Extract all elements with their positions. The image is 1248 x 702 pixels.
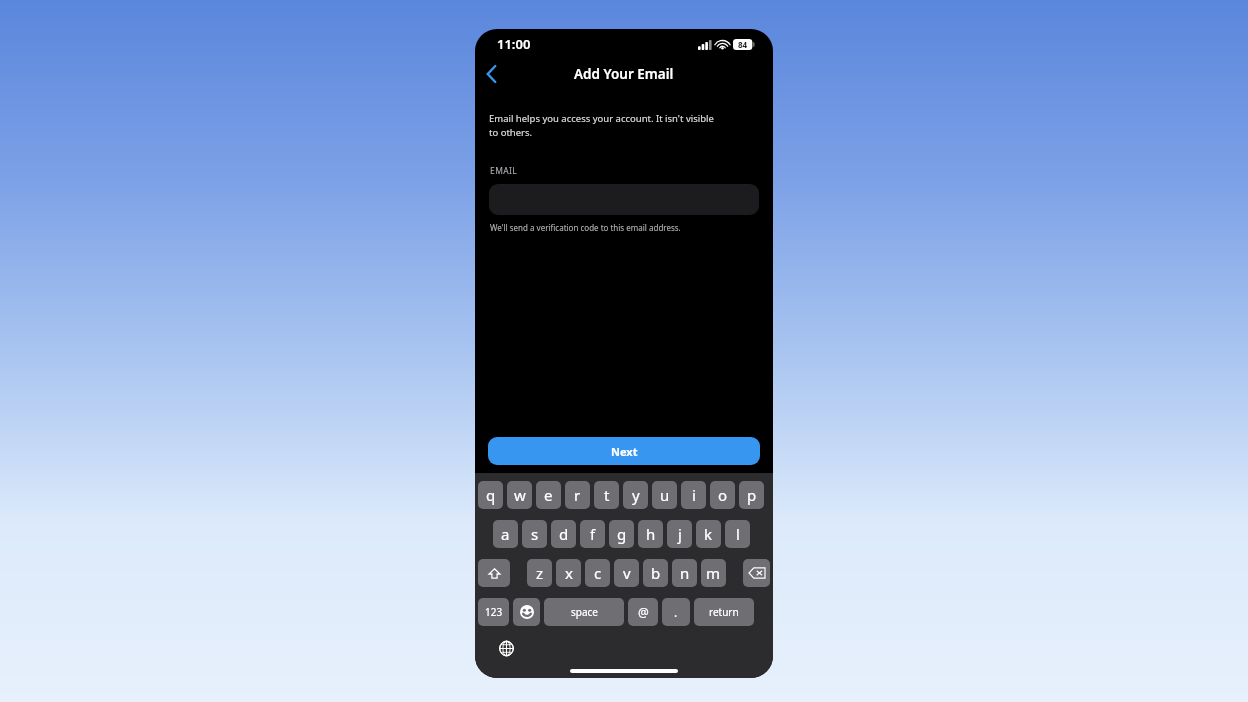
staticText: t: [604, 485, 610, 505]
staticText: i: [692, 485, 696, 505]
button[interactable]: m: [701, 559, 726, 587]
button[interactable]: return: [694, 598, 754, 626]
staticText: y: [632, 485, 640, 505]
staticText: d: [559, 524, 569, 544]
staticText: h: [646, 524, 656, 544]
button[interactable]: s: [522, 520, 547, 548]
button[interactable]: x: [556, 559, 581, 587]
staticText: @: [638, 604, 649, 620]
staticText: EMAIL: [490, 165, 518, 177]
button[interactable]: a: [493, 520, 518, 548]
button[interactable]: b: [643, 559, 668, 587]
staticText: z: [536, 563, 544, 583]
staticText: q: [486, 485, 496, 505]
staticText: a: [501, 524, 510, 544]
button[interactable]: f: [580, 520, 605, 548]
button[interactable]: Change keyboard language: [495, 637, 517, 659]
button[interactable]: Emoji: [513, 598, 540, 626]
button[interactable]: c: [585, 559, 610, 587]
staticText: u: [660, 485, 670, 505]
button[interactable]: e: [536, 481, 561, 509]
button[interactable]: w: [507, 481, 532, 509]
button[interactable]: g: [609, 520, 634, 548]
staticText: Add Your Email: [574, 65, 674, 83]
staticText: Next: [611, 444, 638, 459]
button[interactable]: d: [551, 520, 576, 548]
staticText: j: [678, 524, 682, 544]
button[interactable]: o: [710, 481, 735, 509]
button[interactable]: h: [638, 520, 663, 548]
button[interactable]: space: [544, 598, 624, 626]
staticText: f: [590, 524, 596, 544]
staticText: 84: [738, 39, 748, 50]
button[interactable]: @: [628, 598, 658, 626]
staticText: v: [623, 563, 631, 583]
button[interactable]: 123: [478, 598, 509, 626]
button[interactable]: .: [662, 598, 690, 626]
button[interactable]: l: [725, 520, 750, 548]
staticText: x: [565, 563, 573, 583]
button[interactable]: Next: [488, 437, 760, 465]
button[interactable]: j: [667, 520, 692, 548]
staticText: .: [674, 604, 678, 620]
button[interactable]: k: [696, 520, 721, 548]
button[interactable]: p: [739, 481, 764, 509]
button[interactable]: q: [478, 481, 503, 509]
staticText: s: [531, 524, 539, 544]
staticText: g: [617, 524, 627, 544]
staticText: o: [718, 485, 728, 505]
button[interactable]: u: [652, 481, 677, 509]
staticText: m: [706, 563, 721, 583]
staticText: return: [709, 605, 739, 619]
staticText: l: [736, 524, 740, 544]
staticText: r: [574, 485, 581, 505]
staticText: c: [594, 563, 602, 583]
staticText: k: [704, 524, 713, 544]
staticText: Email helps you access your account. It …: [489, 112, 714, 139]
button[interactable]: r: [565, 481, 590, 509]
staticText: n: [680, 563, 690, 583]
staticText: 123: [485, 605, 503, 619]
staticText: e: [544, 485, 553, 505]
button[interactable]: z: [527, 559, 552, 587]
button[interactable]: v: [614, 559, 639, 587]
button[interactable]: t: [594, 481, 619, 509]
staticText: 11:00: [497, 35, 531, 53]
staticText: We'll send a verification code to this e…: [490, 222, 681, 233]
staticText: w: [514, 485, 526, 505]
button[interactable]: Backspace: [743, 559, 770, 587]
button[interactable]: n: [672, 559, 697, 587]
button[interactable]: Shift: [478, 559, 510, 587]
staticText: b: [651, 563, 661, 583]
button[interactable]: i: [681, 481, 706, 509]
staticText: space: [571, 605, 598, 619]
staticText: p: [747, 485, 757, 505]
button[interactable]: Back: [475, 59, 507, 89]
button[interactable]: y: [623, 481, 648, 509]
